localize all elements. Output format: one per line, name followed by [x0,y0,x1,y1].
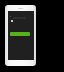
button[interactable] [10,32,30,36]
